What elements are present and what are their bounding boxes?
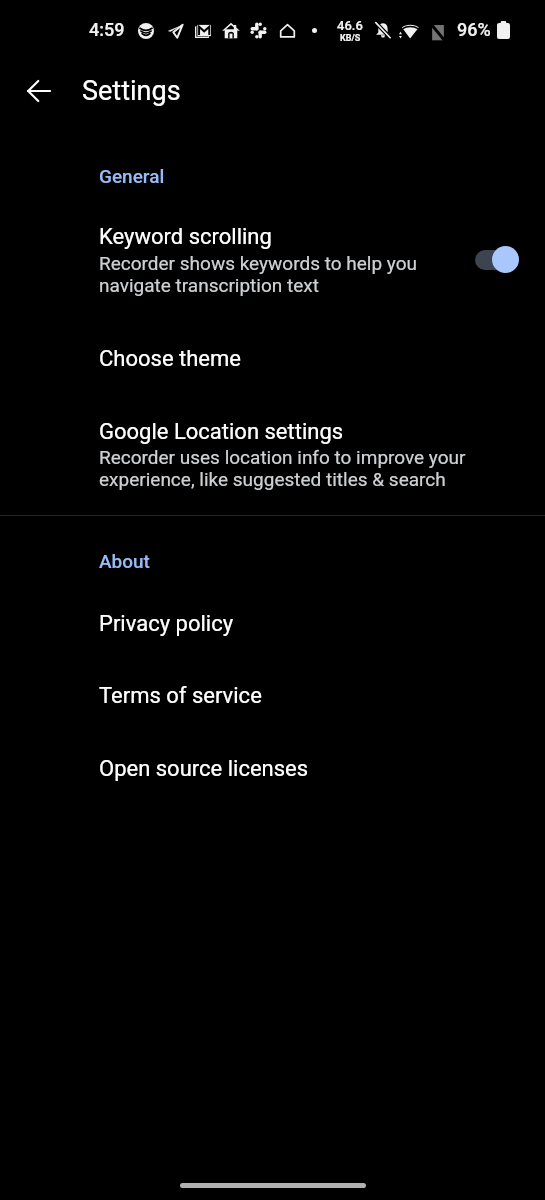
button[interactable]: Terms of service xyxy=(0,663,545,715)
staticText: Settings xyxy=(82,75,181,107)
staticText: Choose theme xyxy=(99,346,241,372)
staticText: Open source licenses xyxy=(99,756,309,782)
button[interactable]: Open source licenses xyxy=(0,736,545,788)
staticText: Recorder shows keywords to help you navi… xyxy=(99,252,417,296)
button[interactable]: Back xyxy=(15,67,63,115)
button[interactable]: Privacy policy xyxy=(0,591,545,643)
staticText: 4:59 xyxy=(89,19,125,40)
staticText: Recorder uses location info to improve y… xyxy=(99,446,466,490)
button[interactable]: Choose theme xyxy=(0,326,545,378)
staticText: KB/S xyxy=(340,33,361,44)
staticText: 96% xyxy=(457,19,491,40)
staticText: Google Location settings xyxy=(99,419,344,445)
button[interactable]: Keyword scrolling xyxy=(0,203,545,307)
staticText: Keyword scrolling xyxy=(99,224,272,250)
staticText: About xyxy=(99,550,150,572)
staticText: Terms of service xyxy=(99,683,262,709)
staticText: 46.6 xyxy=(337,18,363,33)
staticText: Privacy policy xyxy=(99,611,234,637)
button[interactable]: Google Location settings xyxy=(0,399,545,503)
staticText: General xyxy=(99,165,165,187)
